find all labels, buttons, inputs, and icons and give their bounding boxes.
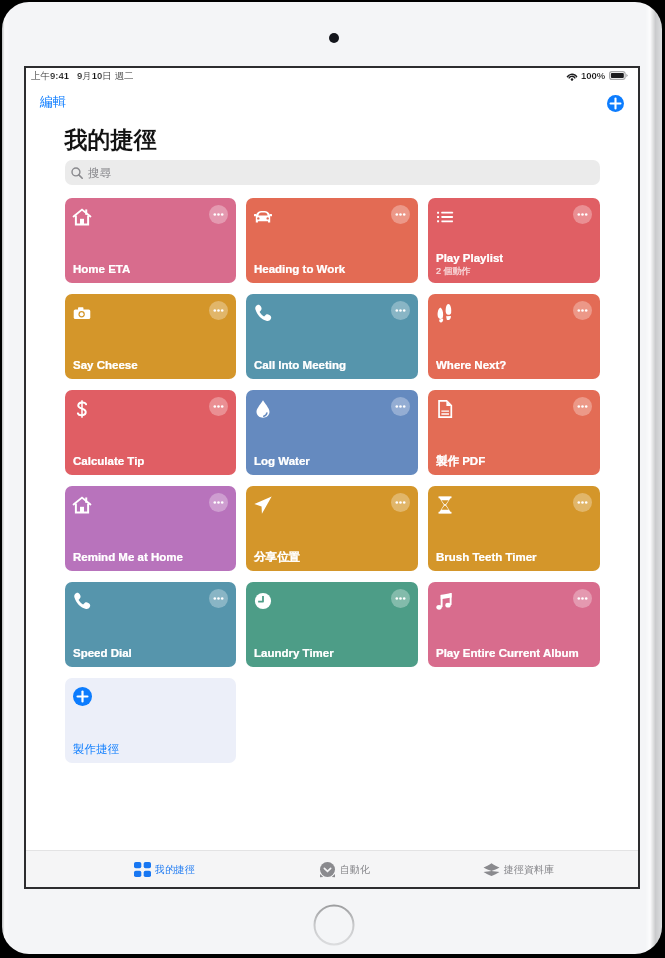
staticText: Log Water xyxy=(254,455,310,468)
staticText: Heading to Work xyxy=(254,263,346,276)
button[interactable]: 自動化 xyxy=(317,851,372,887)
button[interactable]: Add shortcut xyxy=(607,95,624,112)
button[interactable]: 捷徑資料庫 xyxy=(481,851,556,887)
button[interactable]: 我的捷徑 xyxy=(132,851,197,887)
button[interactable]: More options xyxy=(391,397,410,416)
button[interactable]: More options xyxy=(209,397,228,416)
button[interactable]: 製作捷徑 xyxy=(65,678,236,763)
staticText: Speed Dial xyxy=(73,647,132,660)
staticText: Calculate Tip xyxy=(73,455,145,468)
button[interactable]: More options xyxy=(428,390,600,475)
staticText: 搜尋 xyxy=(88,166,111,180)
button[interactable]: More options xyxy=(209,205,228,224)
button[interactable]: More options xyxy=(209,589,228,608)
button[interactable]: More options xyxy=(391,301,410,320)
button[interactable]: More options xyxy=(246,198,418,283)
button[interactable]: More options xyxy=(65,582,236,667)
button[interactable]: More options xyxy=(573,589,592,608)
button[interactable]: More options xyxy=(65,198,236,283)
button[interactable]: More options xyxy=(209,301,228,320)
staticText: Laundry Timer xyxy=(254,647,334,660)
staticText: 製作 PDF xyxy=(436,454,486,468)
button[interactable]: More options xyxy=(573,397,592,416)
button[interactable]: 搜尋 xyxy=(65,160,600,185)
button[interactable]: More options xyxy=(428,294,600,379)
button[interactable]: More options xyxy=(391,493,410,512)
button[interactable]: More options xyxy=(246,486,418,571)
staticText: Remind Me at Home xyxy=(73,551,183,564)
button[interactable]: More options xyxy=(209,493,228,512)
button[interactable]: More options xyxy=(65,390,236,475)
staticText: Call Into Meeting xyxy=(254,359,346,372)
staticText: 捷徑資料庫 xyxy=(504,863,554,876)
staticText: 自動化 xyxy=(340,863,370,876)
staticText: 上午9:41 9月10日 週二 xyxy=(31,70,134,82)
button[interactable]: More options xyxy=(391,589,410,608)
staticText: 分享位置 xyxy=(254,550,300,564)
button[interactable]: More options xyxy=(246,294,418,379)
staticText: Play Entire Current Album xyxy=(436,647,579,660)
button[interactable]: More options xyxy=(573,493,592,512)
staticText: 編輯 xyxy=(40,93,66,109)
staticText: 100% xyxy=(581,70,606,81)
button[interactable]: More options xyxy=(573,301,592,320)
staticText: Say Cheese xyxy=(73,359,138,372)
staticText: Where Next? xyxy=(436,359,507,372)
staticText: 製作捷徑 xyxy=(73,742,119,756)
button[interactable]: More options xyxy=(65,294,236,379)
button[interactable]: More options xyxy=(391,205,410,224)
button[interactable]: More options xyxy=(428,486,600,571)
staticText: Play Playlist xyxy=(436,252,504,265)
button[interactable]: More options xyxy=(246,582,418,667)
staticText: 我的捷徑 xyxy=(155,863,195,876)
staticText: 我的捷徑 xyxy=(64,126,156,155)
button[interactable]: More options xyxy=(428,582,600,667)
button[interactable]: More options xyxy=(246,390,418,475)
button[interactable]: More options xyxy=(428,198,600,283)
button[interactable]: 編輯 xyxy=(39,92,67,110)
staticText: Home ETA xyxy=(73,263,131,276)
staticText: 2 個動作 xyxy=(436,265,471,276)
staticText: Brush Teeth Timer xyxy=(436,551,537,564)
button[interactable]: More options xyxy=(573,205,592,224)
button[interactable]: More options xyxy=(65,486,236,571)
